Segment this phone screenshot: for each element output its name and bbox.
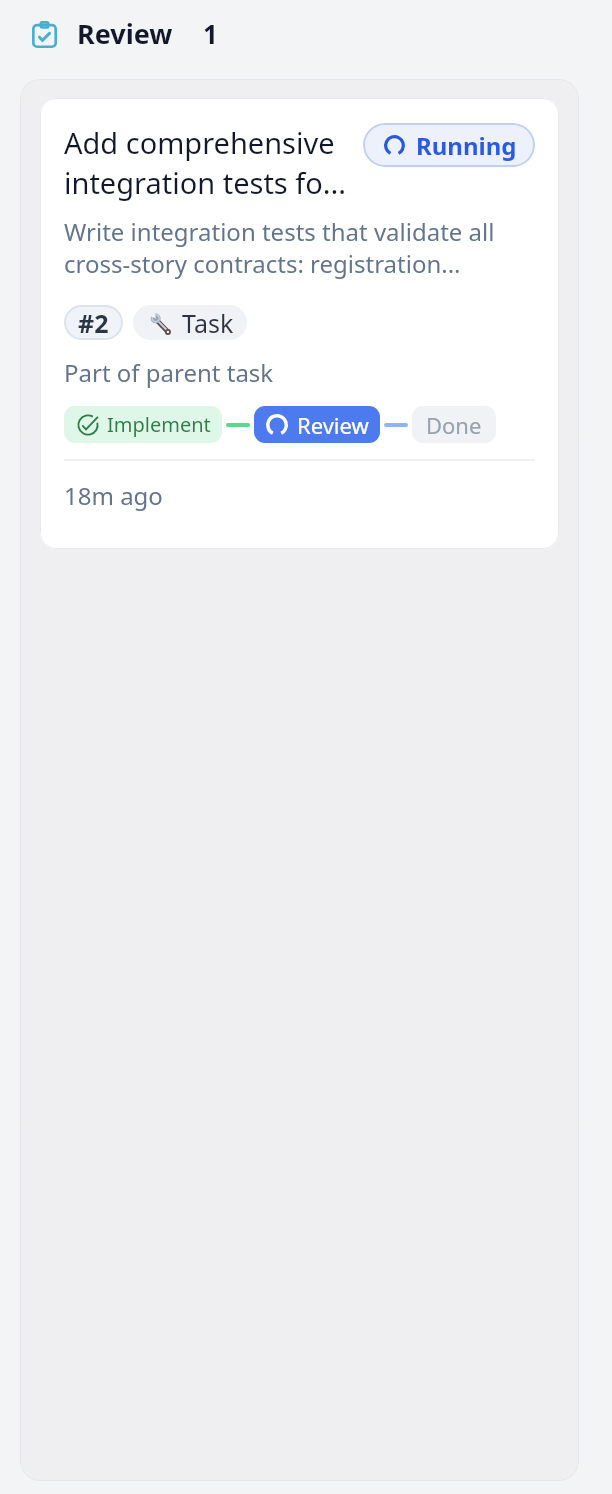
staticText: Running	[416, 129, 517, 162]
button[interactable]: #2	[64, 305, 123, 340]
button[interactable]: Add comprehensive integration tests fo..…	[40, 98, 559, 549]
staticText: #2	[78, 306, 109, 340]
staticText: 18m ago	[64, 479, 163, 512]
button[interactable]: Review	[254, 406, 380, 443]
staticText: Review	[77, 15, 173, 52]
other: Review	[32, 21, 57, 48]
button[interactable]: Review	[0, 0, 612, 79]
button[interactable]: Task	[133, 305, 247, 340]
staticText: Done	[426, 410, 482, 440]
button[interactable]: Done	[412, 406, 496, 443]
staticText: Add comprehensive integration tests fo..…	[64, 123, 347, 203]
staticText: 1	[203, 16, 218, 51]
staticText: Task	[182, 306, 234, 340]
staticText: Review	[297, 410, 369, 440]
staticText: Implement	[107, 411, 211, 438]
button[interactable]: Running	[363, 123, 535, 167]
staticText: Write integration tests that validate al…	[64, 215, 495, 280]
button[interactable]: Implement	[64, 406, 222, 443]
staticText: Part of parent task	[64, 356, 274, 389]
